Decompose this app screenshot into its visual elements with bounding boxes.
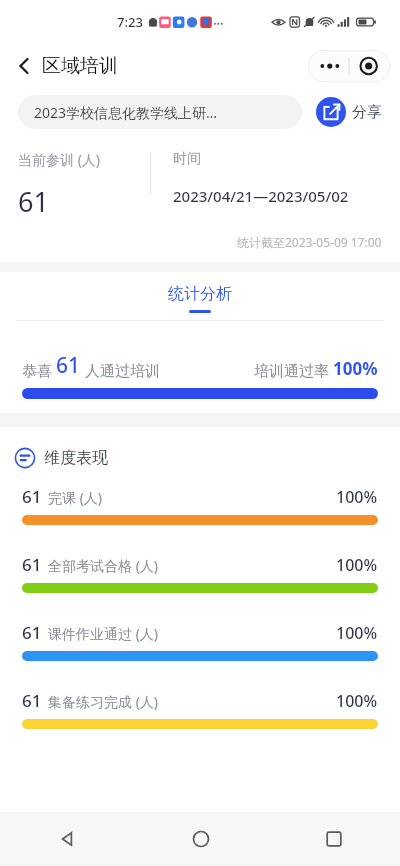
button[interactable]: 61: [0, 553, 400, 621]
staticText: 2023学校信息化教学线上研…: [34, 103, 218, 122]
staticText: 7:23: [117, 13, 143, 31]
staticText: 课件作业通过 (人): [48, 624, 159, 643]
button[interactable]: 61: [0, 689, 400, 757]
staticText: 100%: [336, 554, 378, 576]
button[interactable]: Menu and Close: [308, 50, 390, 82]
staticText: 人通过培训: [81, 360, 160, 380]
button[interactable]: Home: [134, 812, 267, 866]
staticText: 100%: [333, 357, 378, 380]
staticText: 时间: [173, 150, 201, 168]
staticText: 维度表现: [44, 448, 108, 468]
staticText: 61: [56, 351, 81, 380]
staticText: 100%: [336, 622, 378, 644]
staticText: 区域培训: [42, 54, 118, 78]
staticText: 恭喜: [22, 360, 56, 380]
staticText: 集备练习完成 (人): [48, 692, 159, 711]
staticText: 培训通过率: [254, 360, 333, 380]
staticText: 61: [22, 621, 42, 644]
staticText: 全部考试合格 (人): [48, 556, 159, 575]
staticText: 统计截至2023-05-09 17:00: [237, 234, 382, 250]
staticText: 当前参训 (人): [18, 150, 101, 169]
staticText: 100%: [336, 486, 378, 508]
button[interactable]: 61: [0, 485, 400, 553]
staticText: 统计分析: [168, 284, 232, 304]
staticText: 61: [22, 553, 42, 576]
button[interactable]: Back: [0, 812, 134, 866]
staticText: 2023/04/21—2023/05/02: [173, 186, 349, 206]
staticText: 61: [22, 485, 42, 508]
button[interactable]: 2023学校信息化教学线上研…: [18, 95, 302, 129]
staticText: 100%: [336, 690, 378, 712]
staticText: 61: [18, 183, 49, 220]
button[interactable]: 统计分析: [0, 272, 400, 320]
staticText: 完课 (人): [48, 488, 103, 507]
button[interactable]: 61: [0, 621, 400, 689]
staticText: 61: [22, 689, 42, 712]
staticText: 分享: [352, 103, 382, 122]
button[interactable]: Recent apps: [267, 812, 400, 866]
button[interactable]: Back: [6, 48, 42, 84]
button[interactable]: 分享: [316, 97, 382, 127]
